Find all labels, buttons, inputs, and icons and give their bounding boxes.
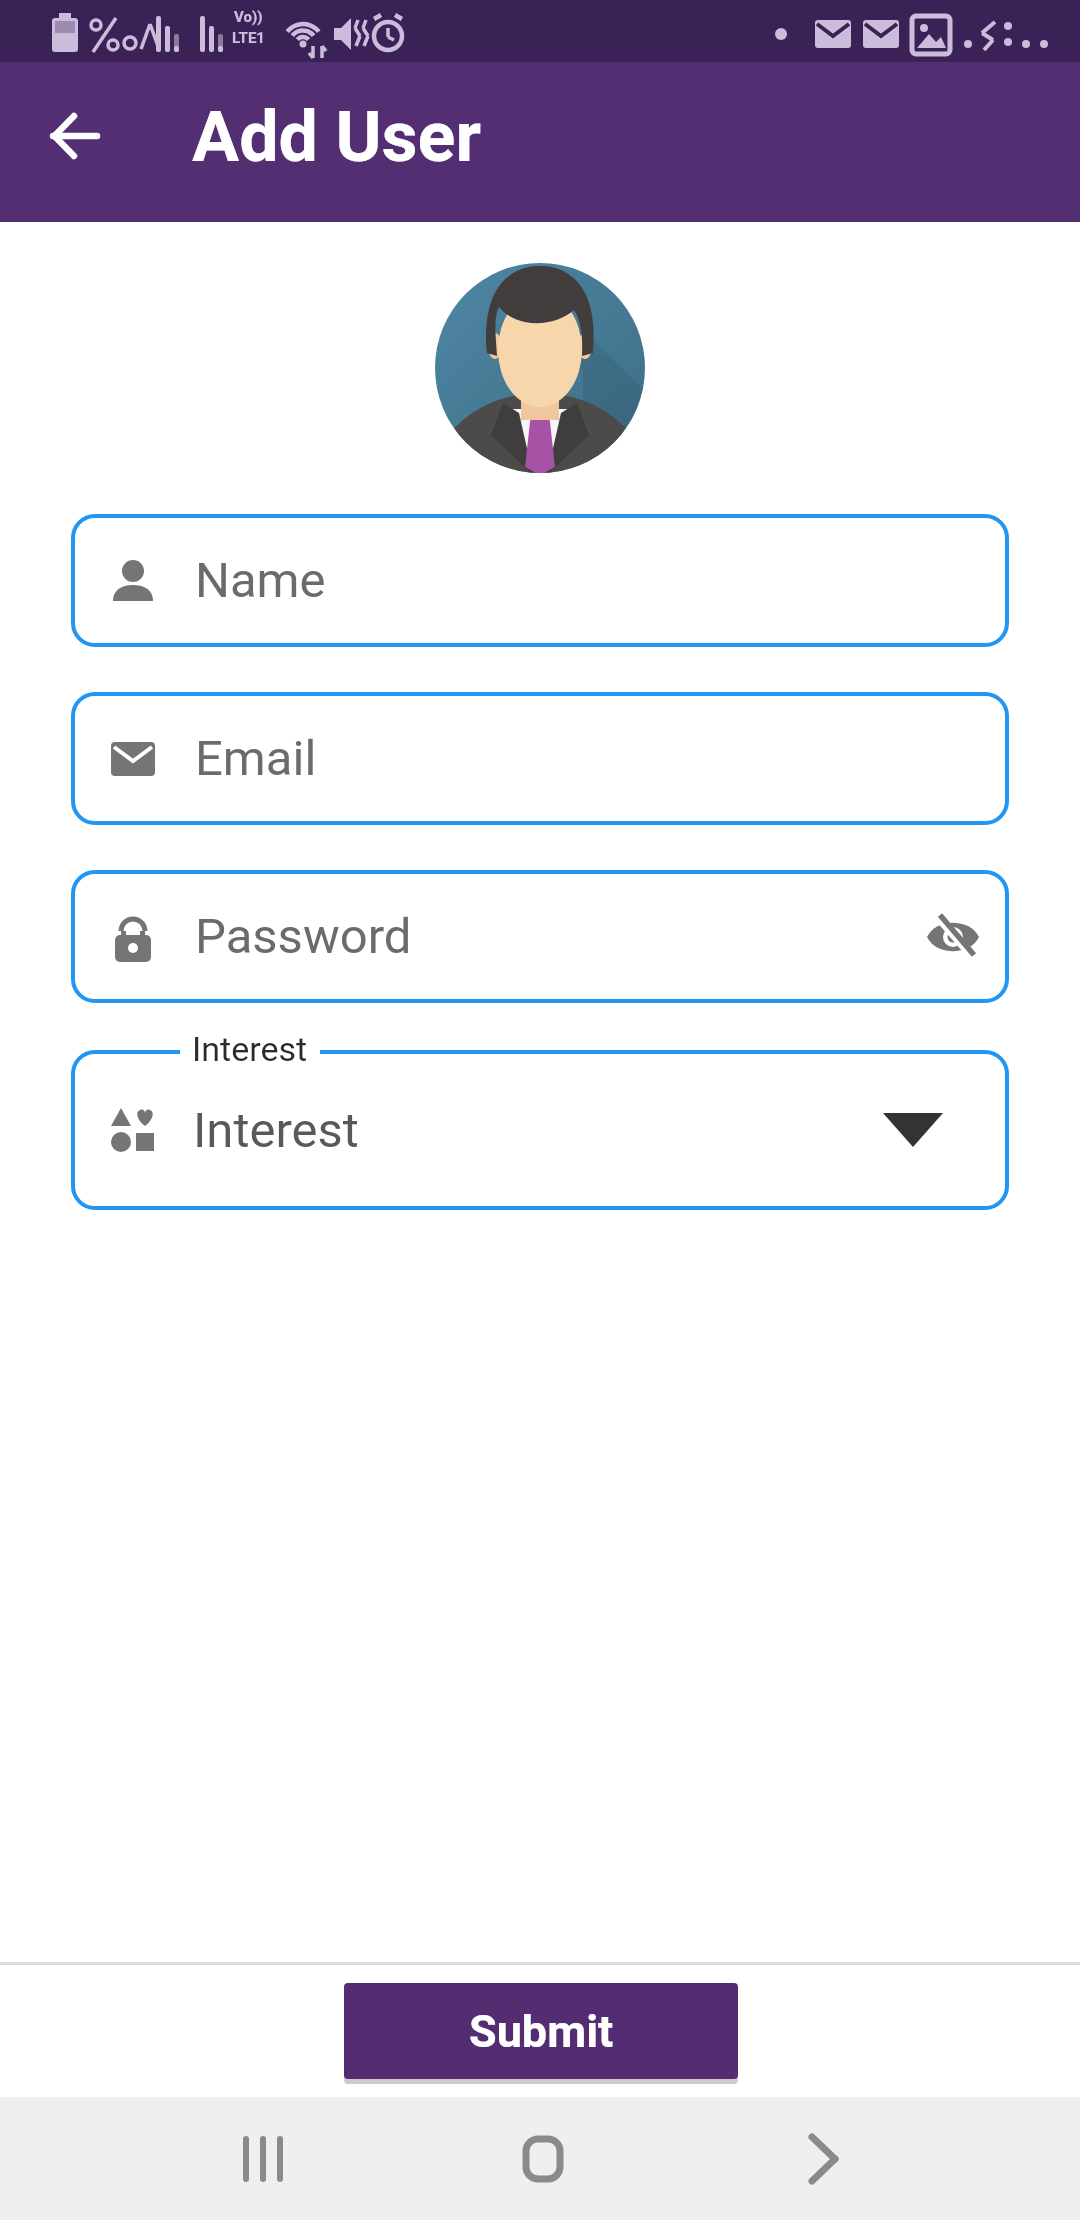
staticText: Add User <box>192 96 482 178</box>
button[interactable]: Password <box>71 870 1009 1003</box>
button[interactable] <box>203 2098 323 2219</box>
button[interactable]: Name <box>71 514 1009 647</box>
button[interactable]: Interest <box>71 1050 1009 1210</box>
staticText: Submit <box>469 2005 614 2058</box>
button[interactable] <box>27 88 123 184</box>
staticText: Interest <box>193 1102 359 1159</box>
staticText: Email <box>195 730 317 787</box>
button[interactable]: Email <box>71 692 1009 825</box>
button[interactable] <box>764 2098 884 2219</box>
staticText: Vo)) <box>234 8 263 26</box>
staticText: Interest <box>192 1029 308 1069</box>
staticText: Name <box>195 552 326 609</box>
button[interactable]: Submit <box>344 1983 738 2079</box>
button[interactable] <box>483 2098 603 2219</box>
staticText: Password <box>195 908 412 965</box>
staticText: LTE1 <box>232 29 265 47</box>
